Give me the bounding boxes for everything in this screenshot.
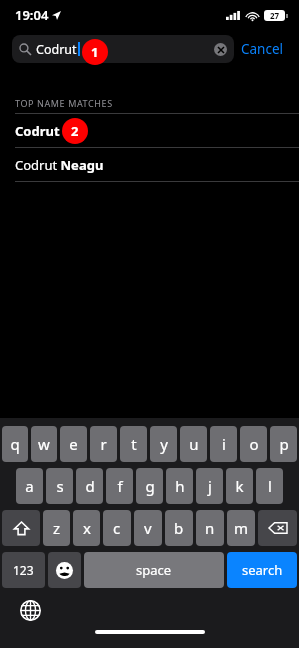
- staticText: search: [242, 561, 283, 579]
- button[interactable]: Shift: [2, 510, 40, 546]
- button[interactable]: o: [240, 426, 267, 462]
- staticText: i: [222, 434, 226, 454]
- button[interactable]: 123: [2, 552, 45, 588]
- staticText: v: [144, 518, 152, 538]
- staticText: 27: [270, 10, 280, 21]
- button[interactable]: Codrut: [12, 35, 234, 63]
- button[interactable]: u: [180, 426, 207, 462]
- staticText: h: [175, 476, 185, 496]
- button[interactable]: i: [210, 426, 237, 462]
- staticText: x: [83, 518, 91, 538]
- button[interactable]: j: [196, 468, 223, 504]
- staticText: z: [53, 518, 61, 538]
- staticText: w: [38, 434, 50, 454]
- button[interactable]: z: [43, 510, 70, 546]
- button[interactable]: t: [120, 426, 147, 462]
- button[interactable]: c: [103, 510, 131, 546]
- button[interactable]: x: [73, 510, 100, 546]
- button[interactable]: d: [76, 468, 103, 504]
- staticText: t: [131, 434, 137, 454]
- staticText: Codrut: [36, 41, 77, 58]
- staticText: y: [160, 434, 168, 454]
- button[interactable]: y: [150, 426, 177, 462]
- button[interactable]: Codrut Neagu: [0, 148, 299, 181]
- button[interactable]: Codrut: [0, 114, 299, 147]
- staticText: space: [136, 561, 172, 579]
- button[interactable]: f: [106, 468, 133, 504]
- button[interactable]: h: [166, 468, 193, 504]
- button[interactable]: Emoji: [48, 552, 81, 588]
- staticText: r: [100, 434, 107, 454]
- staticText: b: [174, 518, 184, 538]
- staticText: k: [235, 476, 244, 496]
- button[interactable]: Backspace: [258, 510, 297, 546]
- staticText: o: [249, 434, 259, 454]
- staticText: c: [113, 518, 121, 538]
- button[interactable]: l: [256, 468, 283, 504]
- button[interactable]: search: [227, 552, 297, 588]
- button[interactable]: space: [84, 552, 224, 588]
- staticText: TOP NAME MATCHES: [15, 97, 113, 109]
- button[interactable]: a: [16, 468, 43, 504]
- button[interactable]: q: [2, 426, 28, 462]
- staticText: 2: [71, 122, 79, 140]
- staticText: a: [25, 476, 34, 496]
- button[interactable]: g: [136, 468, 163, 504]
- button[interactable]: w: [31, 426, 57, 462]
- button[interactable]: e: [60, 426, 87, 462]
- staticText: n: [205, 518, 215, 538]
- button[interactable]: Clear text: [214, 43, 227, 56]
- staticText: Cancel: [241, 40, 284, 58]
- button[interactable]: n: [196, 510, 224, 546]
- staticText: d: [85, 476, 95, 496]
- button[interactable]: r: [90, 426, 117, 462]
- staticText: 123: [13, 562, 34, 578]
- button[interactable]: s: [46, 468, 73, 504]
- staticText: l: [268, 476, 272, 496]
- staticText: f: [117, 476, 123, 496]
- staticText: s: [56, 476, 64, 496]
- button[interactable]: b: [165, 510, 193, 546]
- staticText: Codrut: [15, 122, 60, 140]
- button[interactable]: Change keyboard language: [16, 596, 44, 624]
- button[interactable]: Cancel: [234, 34, 291, 64]
- button[interactable]: k: [226, 468, 253, 504]
- staticText: j: [208, 476, 212, 496]
- staticText: 19:04: [15, 6, 49, 24]
- staticText: q: [10, 434, 20, 454]
- staticText: m: [234, 518, 249, 538]
- staticText: p: [279, 434, 289, 454]
- button[interactable]: v: [134, 510, 162, 546]
- staticText: Codrut Neagu: [15, 156, 104, 174]
- button[interactable]: p: [270, 426, 297, 462]
- staticText: 1: [91, 43, 99, 61]
- button[interactable]: m: [227, 510, 255, 546]
- staticText: e: [69, 434, 78, 454]
- staticText: u: [189, 434, 199, 454]
- staticText: g: [145, 476, 155, 496]
